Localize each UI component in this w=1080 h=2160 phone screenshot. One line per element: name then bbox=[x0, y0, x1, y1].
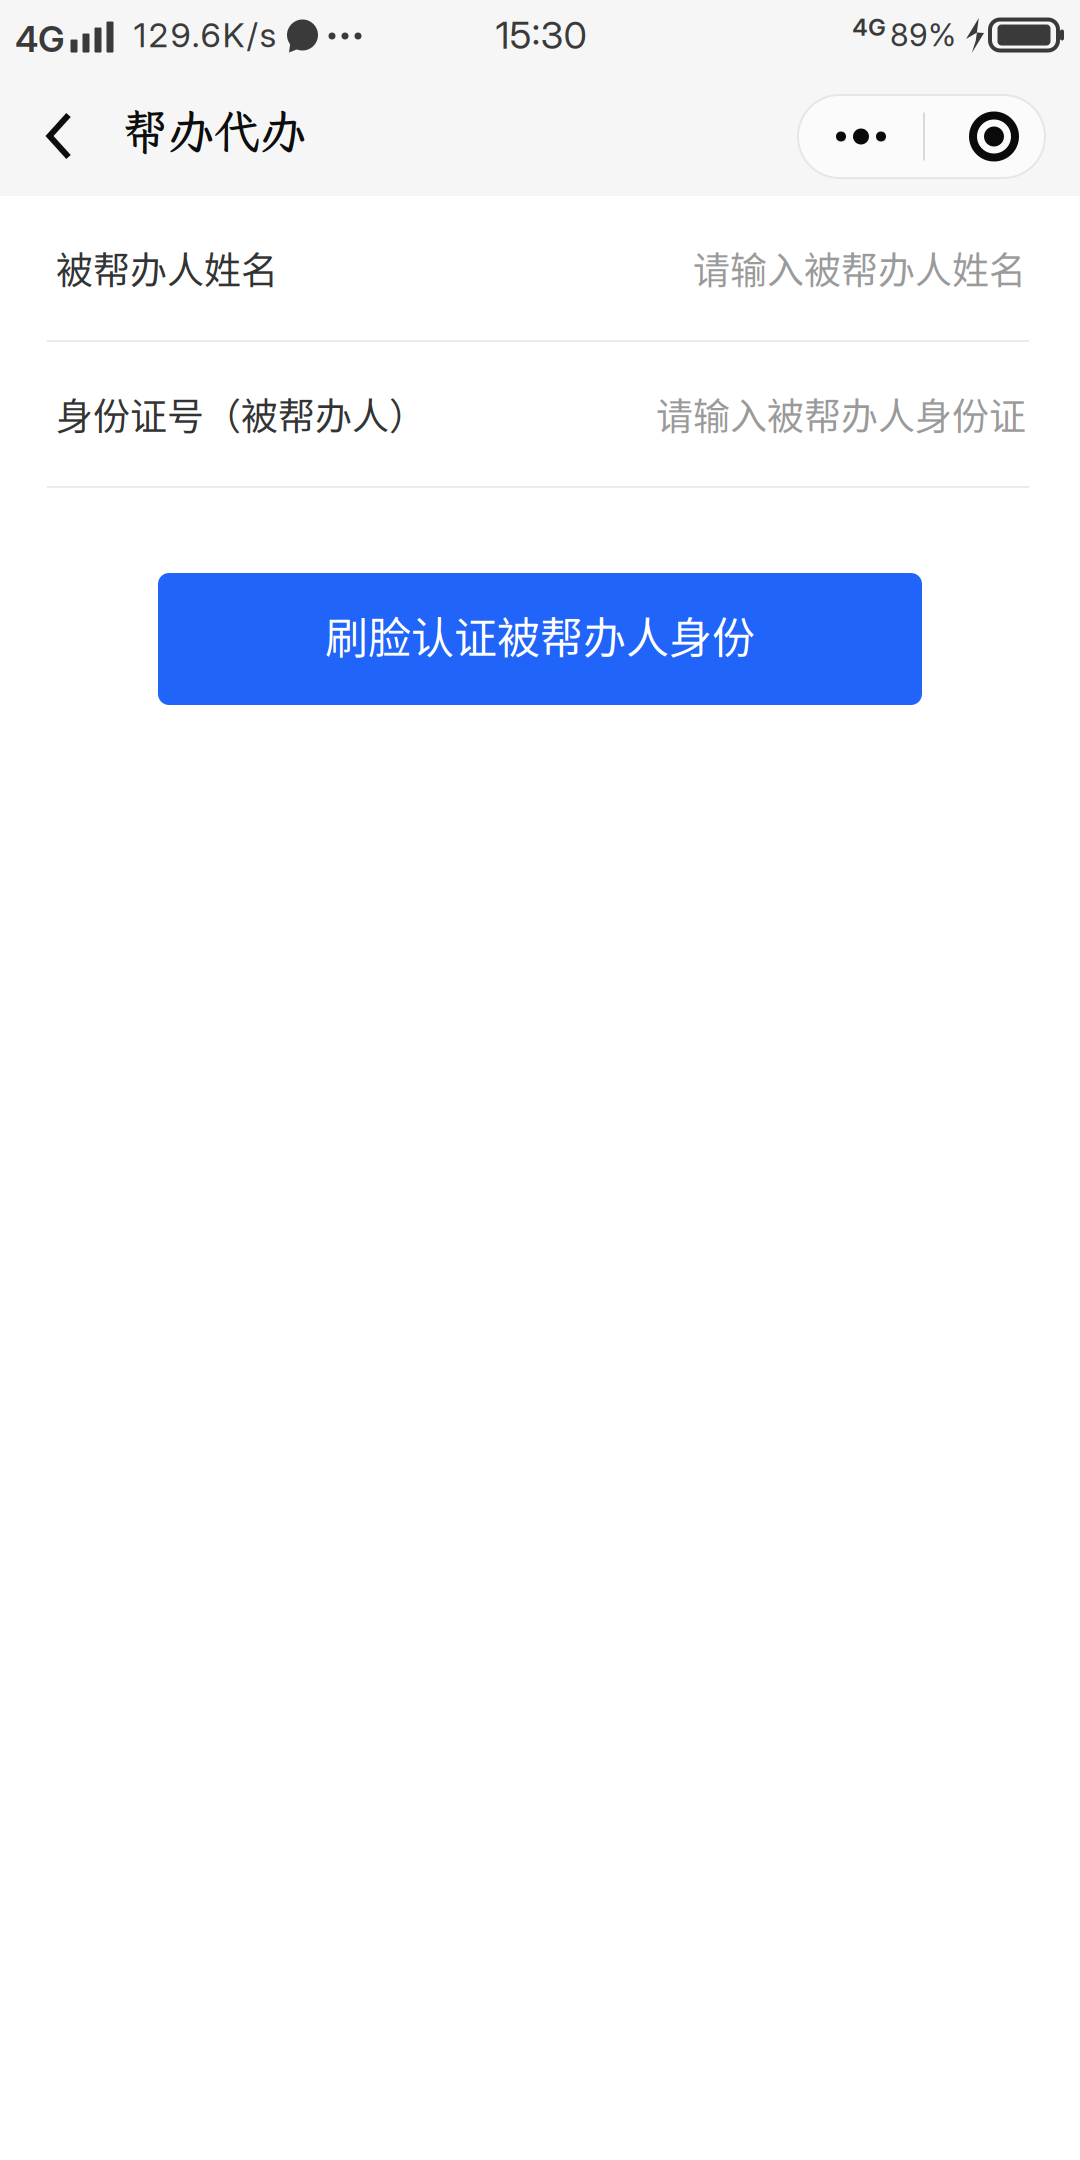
staticText: 4G bbox=[15, 17, 65, 61]
staticText: 15:30 bbox=[495, 12, 586, 58]
button[interactable]: 身份证号（被帮办人） bbox=[0, 342, 1080, 486]
staticText: 身份证号（被帮办人） bbox=[56, 387, 426, 441]
staticText: 被帮办人姓名 bbox=[56, 241, 278, 295]
staticText: 129.6K/s bbox=[133, 14, 276, 55]
button[interactable]: Close mini program bbox=[933, 95, 1054, 178]
staticText: 请输入被帮办人姓名 bbox=[693, 241, 1026, 295]
button[interactable]: More bbox=[798, 95, 924, 178]
staticText: 帮办代办 bbox=[122, 101, 306, 161]
staticText: 89% bbox=[890, 16, 956, 54]
staticText: 刷脸认证被帮办人身份 bbox=[325, 604, 755, 666]
button[interactable]: Back bbox=[13, 81, 105, 191]
staticText: 4G bbox=[852, 12, 886, 41]
staticText: 请输入被帮办人身份证 bbox=[656, 387, 1026, 441]
button[interactable]: 被帮办人姓名 bbox=[0, 196, 1080, 340]
button[interactable]: 刷脸认证被帮办人身份 bbox=[158, 573, 922, 705]
